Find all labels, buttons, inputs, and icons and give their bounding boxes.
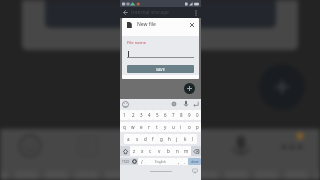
staticText: 9 <box>188 112 191 118</box>
staticText: 5 <box>156 112 159 118</box>
button[interactable]: Switch language <box>130 158 138 165</box>
staticText: f <box>152 136 154 142</box>
button[interactable]: Add <box>184 83 195 94</box>
staticText: s <box>136 136 139 142</box>
button[interactable]: c <box>146 146 155 156</box>
button[interactable]: 7 <box>169 110 177 120</box>
staticText: 6 <box>164 112 167 118</box>
button[interactable]: i <box>177 122 185 132</box>
staticText: SAVE <box>156 67 165 72</box>
button[interactable]: / <box>138 158 145 165</box>
staticText: q <box>123 124 126 130</box>
button[interactable]: l <box>189 134 197 144</box>
button[interactable]: h <box>165 134 173 144</box>
button[interactable]: b <box>164 146 173 156</box>
button[interactable]: z <box>130 146 138 156</box>
staticText: r <box>148 124 150 130</box>
staticText: , <box>178 159 180 165</box>
button[interactable]: 8 <box>177 110 185 120</box>
button[interactable]: v <box>155 146 164 156</box>
button[interactable]: s <box>133 134 141 144</box>
button[interactable]: x <box>138 146 146 156</box>
staticText: File name <box>127 40 146 46</box>
button[interactable]: 5 <box>153 110 161 120</box>
button[interactable]: 9 <box>185 110 193 120</box>
button[interactable]: p <box>193 122 201 132</box>
button[interactable]: f <box>149 134 157 144</box>
staticText: 1 <box>123 112 126 118</box>
button[interactable]: j <box>173 134 181 144</box>
staticText: Internal storage <box>131 9 169 16</box>
button[interactable]: Back <box>120 7 131 18</box>
staticText: 2 <box>132 112 135 118</box>
staticText: x <box>141 148 144 154</box>
staticText: 4 <box>148 112 151 118</box>
staticText: z <box>133 148 136 154</box>
button[interactable]: d <box>141 134 149 144</box>
staticText: 0 <box>196 112 199 118</box>
staticText: k <box>184 136 187 142</box>
button[interactable]: n <box>173 146 182 156</box>
staticText: w <box>131 124 135 130</box>
staticText: g <box>160 136 163 142</box>
staticText: e <box>140 124 143 130</box>
button[interactable]: y <box>161 122 169 132</box>
staticText: j <box>176 136 178 142</box>
button[interactable]: Close <box>188 21 195 28</box>
button[interactable]: e <box>137 122 145 132</box>
button[interactable]: 2 <box>129 110 137 120</box>
button[interactable]: Voice input <box>182 100 190 108</box>
button[interactable]: Emoji <box>121 100 130 109</box>
staticText: / <box>141 159 143 165</box>
staticText: c <box>149 148 152 154</box>
staticText: h <box>168 136 171 142</box>
button[interactable]: t <box>153 122 161 132</box>
staticText: b <box>167 148 170 154</box>
staticText: i <box>180 124 182 130</box>
button[interactable]: k <box>181 134 189 144</box>
button[interactable]: a <box>124 134 133 144</box>
button[interactable]: r <box>145 122 153 132</box>
button[interactable]: , <box>176 158 182 165</box>
button[interactable]: More options <box>190 7 201 18</box>
button[interactable]: Shift <box>120 146 130 156</box>
button[interactable]: o <box>185 122 193 132</box>
staticText: a <box>127 136 130 142</box>
staticText: ?123 <box>122 160 129 164</box>
button[interactable]: SAVE <box>127 65 194 73</box>
button[interactable]: q <box>120 122 129 132</box>
staticText: o <box>188 124 191 130</box>
button[interactable]: g <box>157 134 165 144</box>
button[interactable]: w <box>129 122 137 132</box>
button[interactable]: English <box>145 158 176 165</box>
button[interactable]: ?123 <box>120 158 130 165</box>
staticText: d <box>144 136 147 142</box>
button[interactable]: 6 <box>161 110 169 120</box>
button[interactable]: u <box>169 122 177 132</box>
button[interactable]: Hide keyboard <box>192 168 198 174</box>
staticText: l <box>192 136 194 142</box>
staticText: u <box>172 124 175 130</box>
staticText: m <box>184 148 189 154</box>
staticText: 8 <box>180 112 183 118</box>
button[interactable]: m <box>182 146 191 156</box>
button[interactable]: Settings <box>170 100 178 108</box>
staticText: 3 <box>140 112 143 118</box>
button[interactable]: Done <box>188 158 201 165</box>
button[interactable]: Backspace <box>191 146 201 156</box>
button[interactable]: 0 <box>193 110 201 120</box>
staticText: v <box>158 148 161 154</box>
staticText: n <box>176 148 179 154</box>
button[interactable]: 1 <box>120 110 129 120</box>
staticText: 7 <box>172 112 175 118</box>
button[interactable]: . <box>182 158 188 165</box>
button[interactable]: 3 <box>137 110 145 120</box>
staticText: English <box>155 160 166 164</box>
button[interactable]: 4 <box>145 110 153 120</box>
staticText: y <box>164 124 167 130</box>
button[interactable]: Collapse keyboard <box>192 100 200 108</box>
staticText: p <box>196 124 199 130</box>
staticText: . <box>184 159 186 165</box>
staticText: t <box>156 124 158 130</box>
staticText: New file <box>137 21 156 28</box>
